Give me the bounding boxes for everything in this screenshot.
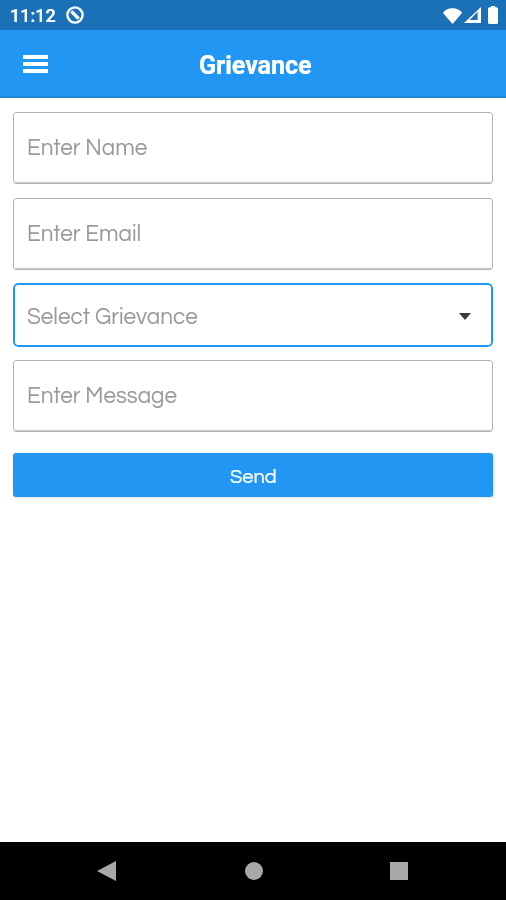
button[interactable]: Recent apps bbox=[375, 847, 423, 895]
staticText: Enter Message bbox=[27, 385, 178, 408]
button[interactable]: Enter Message bbox=[13, 360, 493, 432]
button[interactable]: Open navigation menu bbox=[11, 40, 59, 88]
staticText: Send bbox=[230, 467, 277, 488]
staticText: Enter Name bbox=[27, 137, 148, 160]
button[interactable]: Enter Email bbox=[13, 198, 493, 270]
staticText: 11:12 bbox=[10, 5, 56, 26]
staticText: Select Grievance bbox=[27, 306, 198, 329]
button[interactable]: Back bbox=[82, 847, 130, 895]
staticText: Grievance bbox=[199, 51, 312, 80]
button[interactable]: Select Grievance bbox=[13, 283, 493, 347]
button[interactable]: Send bbox=[13, 453, 493, 497]
button[interactable]: Home bbox=[230, 847, 278, 895]
button[interactable]: Enter Name bbox=[13, 112, 493, 184]
staticText: Enter Email bbox=[27, 223, 142, 246]
